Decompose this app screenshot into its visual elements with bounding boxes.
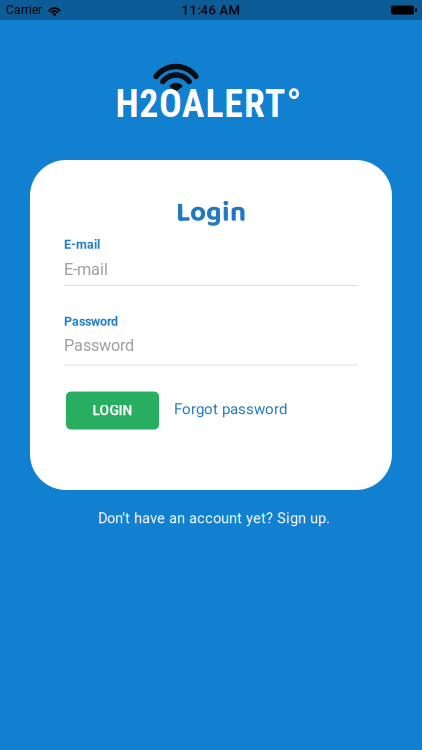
staticText: Password	[64, 336, 134, 355]
staticText: LOGIN	[92, 402, 132, 419]
staticText: E-mail	[64, 260, 108, 279]
button[interactable]: LOGIN	[66, 391, 159, 429]
button[interactable]: Password	[64, 314, 358, 365]
staticText: Carrier	[6, 3, 42, 17]
staticText: Password	[64, 314, 118, 329]
button[interactable]: E-mail	[64, 237, 358, 286]
staticText: H2OALERT°	[115, 82, 301, 126]
button[interactable]: Forgot password	[174, 402, 287, 419]
button[interactable]: Don’t have an account yet? Sign up.	[98, 490, 330, 527]
staticText: Don’t have an account yet? Sign up.	[98, 510, 330, 527]
staticText: Login	[176, 191, 246, 235]
staticText: Forgot password	[174, 400, 287, 418]
staticText: E-mail	[64, 237, 100, 252]
staticText: 11:46 AM	[181, 2, 240, 18]
